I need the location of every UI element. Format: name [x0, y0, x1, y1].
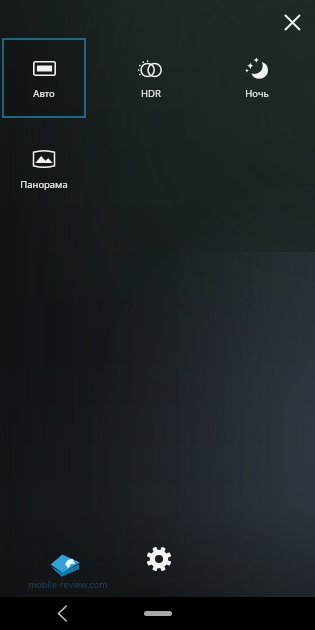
button[interactable]: Авто [3, 39, 85, 117]
button[interactable]: Home [144, 611, 172, 616]
button[interactable]: Gallery [42, 545, 88, 587]
staticText: HDR [141, 87, 161, 100]
button[interactable]: HDR [110, 39, 192, 117]
staticText: mobile-review.com [28, 578, 108, 590]
button[interactable]: Settings [141, 541, 177, 577]
button[interactable]: Close [276, 6, 309, 39]
staticText: Авто [33, 87, 55, 100]
staticText: Панорама [20, 178, 68, 191]
staticText: Ночь [245, 87, 269, 100]
button[interactable]: Ночь [216, 39, 298, 117]
button[interactable]: Back [46, 597, 79, 630]
button[interactable]: Панорама [3, 130, 85, 198]
